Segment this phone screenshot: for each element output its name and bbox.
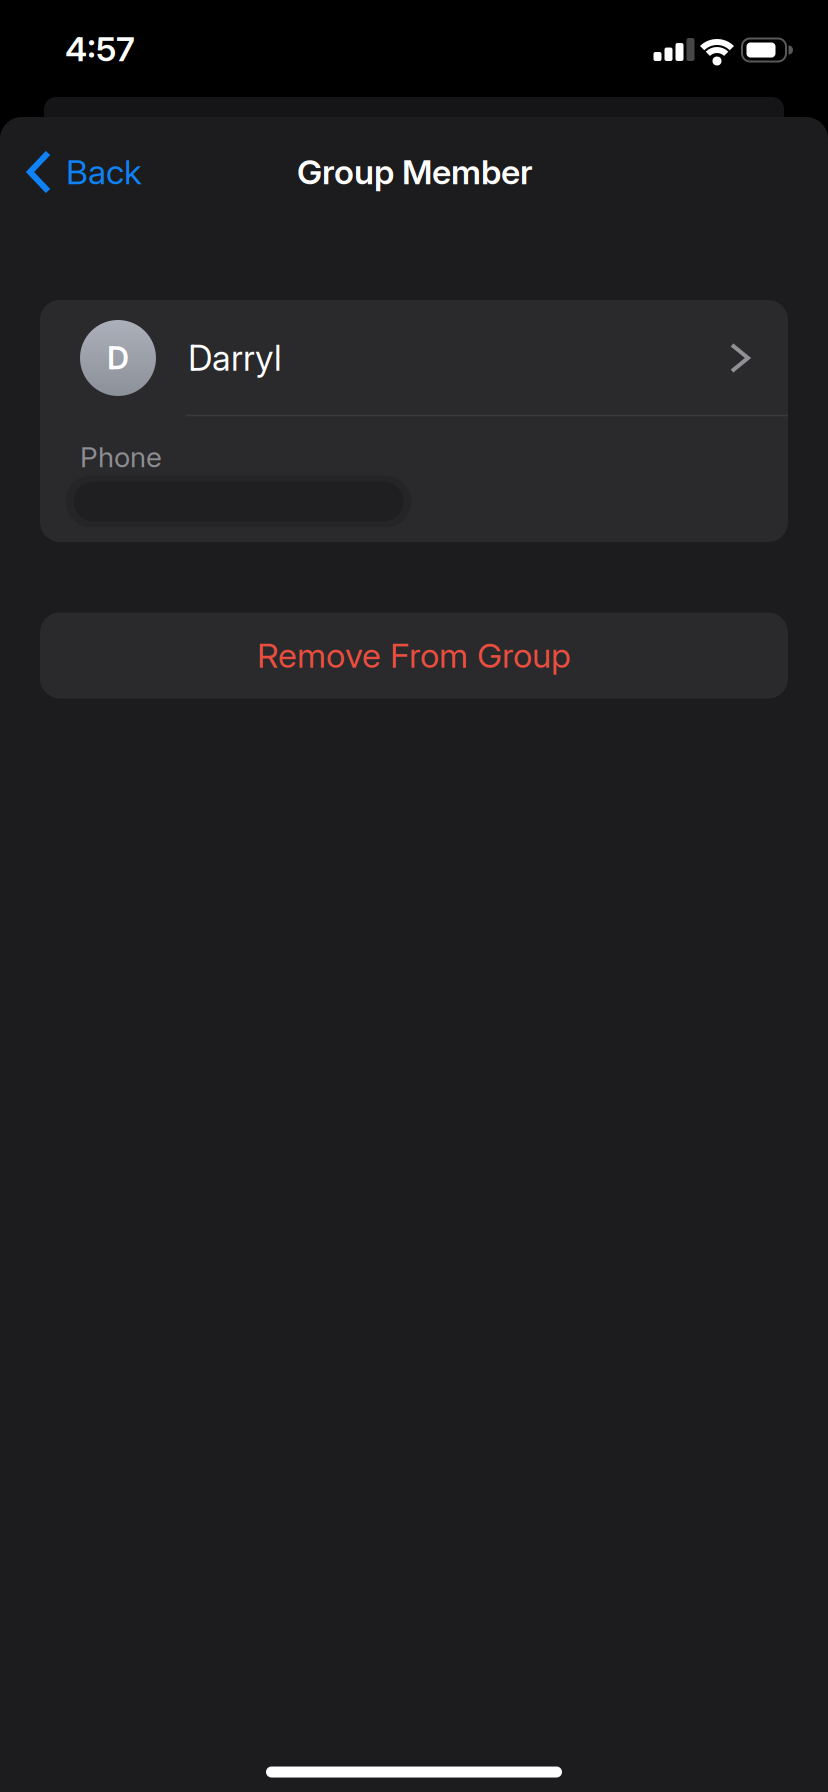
staticText: 4:57 [65, 28, 135, 69]
staticText: D [107, 339, 129, 377]
staticText: Back [66, 151, 142, 192]
button[interactable]: Remove From Group [40, 612, 788, 698]
button[interactable]: D [40, 300, 788, 416]
staticText: Darryl [188, 337, 282, 379]
button[interactable]: Back [8, 142, 180, 202]
staticText: Group Member [297, 151, 533, 192]
staticText: Remove From Group [257, 635, 571, 676]
staticText: Phone [80, 440, 162, 474]
